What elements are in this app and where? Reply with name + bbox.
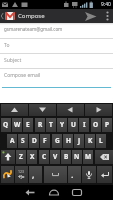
button[interactable] [57, 104, 84, 116]
button[interactable]: M [83, 150, 93, 164]
button[interactable]: R [35, 118, 45, 132]
staticText: Y [60, 120, 65, 129]
button[interactable] [97, 166, 112, 183]
staticText: Q [3, 120, 9, 129]
button[interactable]: S [18, 134, 28, 148]
button[interactable]: H [63, 134, 73, 148]
button[interactable]: B [61, 150, 71, 164]
staticText: G [55, 136, 60, 145]
staticText: X [30, 152, 35, 161]
staticText: N [74, 152, 80, 161]
button[interactable]: To [0, 38, 113, 53]
button[interactable] [1, 150, 15, 164]
staticText: M [85, 152, 92, 161]
button[interactable]: J [74, 134, 84, 148]
button[interactable]: W [12, 118, 22, 132]
button[interactable]: L [96, 134, 106, 148]
staticText: Compose [18, 12, 45, 20]
button[interactable]: . [68, 166, 81, 183]
staticText: S [21, 136, 25, 145]
staticText: W [14, 120, 21, 129]
button[interactable] [82, 9, 99, 23]
button[interactable] [85, 104, 112, 116]
button[interactable]: K [85, 134, 95, 148]
button[interactable]: E [23, 118, 33, 132]
button[interactable]: P [102, 118, 112, 132]
staticText: 9:40 [101, 1, 111, 8]
staticText: K [88, 136, 93, 145]
button[interactable]: T [46, 118, 56, 132]
button[interactable] [101, 9, 113, 23]
button[interactable]: I [79, 118, 89, 132]
button[interactable]: Compose [0, 9, 45, 23]
button[interactable]: Z [16, 150, 26, 164]
staticText: R [38, 120, 43, 129]
button[interactable] [72, 185, 90, 200]
button[interactable]: Compose email [0, 68, 113, 103]
staticText: J [78, 136, 81, 145]
button[interactable]: Subject [0, 53, 113, 68]
staticText: Subject [4, 57, 22, 64]
staticText: 123 [18, 169, 25, 174]
button[interactable]: U [68, 118, 78, 132]
button[interactable] [82, 166, 96, 183]
button[interactable]: G [52, 134, 62, 148]
staticText: gsmarenateam@gmail.com [4, 26, 63, 32]
staticText: F [43, 136, 47, 145]
button[interactable] [29, 104, 56, 116]
button[interactable]: Y [57, 118, 67, 132]
button[interactable] [1, 104, 28, 116]
button[interactable]: N [72, 150, 82, 164]
staticText: I [83, 120, 86, 129]
staticText: O [93, 120, 99, 129]
button[interactable]: C [39, 150, 49, 164]
staticText: C [42, 152, 47, 161]
staticText: Z [19, 152, 23, 161]
button[interactable]: 123 [15, 166, 28, 183]
staticText: P [105, 120, 110, 129]
staticText: U [71, 120, 76, 129]
button[interactable] [95, 150, 113, 164]
staticText: L [99, 136, 103, 145]
staticText: . [71, 168, 74, 180]
staticText: T [49, 120, 53, 129]
button[interactable] [1, 166, 14, 183]
button[interactable]: X [27, 150, 37, 164]
button[interactable]: F [40, 134, 50, 148]
staticText: +!= [18, 174, 25, 180]
button[interactable]: Q [1, 118, 11, 132]
staticText: To [4, 42, 10, 49]
staticText: A [10, 136, 15, 145]
staticText: E [26, 120, 30, 129]
button[interactable] [20, 185, 38, 200]
staticText: H [66, 136, 71, 145]
button[interactable]: A [7, 134, 17, 148]
staticText: Compose email [4, 72, 41, 79]
staticText: B [64, 152, 69, 161]
button[interactable]: , [29, 166, 42, 183]
button[interactable]: V [50, 150, 60, 164]
staticText: V [53, 152, 58, 161]
staticText: D [32, 136, 37, 145]
staticText: , [32, 168, 35, 180]
button[interactable] [44, 166, 67, 183]
button[interactable]: D [29, 134, 39, 148]
button[interactable]: O [91, 118, 101, 132]
button[interactable] [47, 185, 65, 200]
